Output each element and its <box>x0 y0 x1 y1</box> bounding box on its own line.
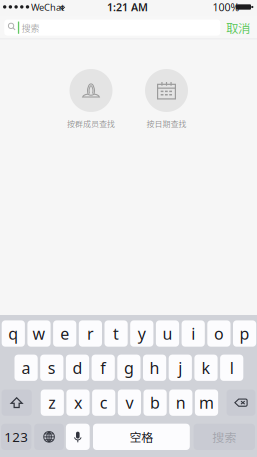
staticText: c <box>100 392 108 413</box>
staticText: l <box>230 357 234 378</box>
staticText: WeChat <box>31 1 64 13</box>
staticText: p <box>240 323 250 344</box>
button[interactable]: l <box>220 355 243 381</box>
staticText: k <box>201 357 210 378</box>
staticText: e <box>60 323 69 344</box>
button[interactable]: v <box>118 389 141 416</box>
button[interactable]: d <box>66 355 89 381</box>
staticText: o <box>214 323 224 344</box>
button[interactable]: s <box>40 355 63 381</box>
staticText: d <box>72 357 82 378</box>
staticText: b <box>150 392 160 413</box>
button[interactable]: f <box>92 355 115 381</box>
staticText: t <box>113 323 119 344</box>
staticText: v <box>125 392 133 413</box>
staticText: a <box>22 357 31 378</box>
staticText: m <box>199 392 214 413</box>
staticText: 取消 <box>226 19 250 37</box>
staticText: r <box>87 323 94 344</box>
button[interactable]: h <box>143 355 166 381</box>
button[interactable]: b <box>143 389 167 416</box>
button[interactable]: u <box>156 320 179 347</box>
button[interactable]: x <box>66 389 90 416</box>
staticText: 搜索 <box>22 21 40 34</box>
button[interactable]: Next keyboard <box>34 424 64 450</box>
button[interactable]: 按日期查找 <box>145 69 188 131</box>
staticText: f <box>100 357 106 378</box>
button[interactable]: t <box>104 320 128 347</box>
button[interactable]: 空格 <box>93 424 190 450</box>
button[interactable]: r <box>79 320 102 347</box>
button[interactable]: j <box>169 355 192 381</box>
button[interactable]: 搜索 <box>194 424 255 450</box>
button[interactable]: 取消 <box>225 20 251 36</box>
button[interactable]: n <box>169 389 192 416</box>
staticText: 100% <box>212 0 239 14</box>
button[interactable]: Shift <box>1 389 32 416</box>
staticText: i <box>191 323 195 344</box>
button[interactable]: Dictation <box>66 424 90 450</box>
button[interactable]: 123 <box>1 424 31 450</box>
button[interactable]: y <box>130 320 153 347</box>
button[interactable]: m <box>195 389 218 416</box>
staticText: 搜索 <box>212 428 236 446</box>
button[interactable]: Delete <box>226 389 255 416</box>
staticText: g <box>124 357 134 378</box>
staticText: 123 <box>4 428 28 446</box>
staticText: s <box>48 357 56 378</box>
staticText: z <box>48 392 56 413</box>
staticText: 1:21 AM <box>107 0 148 14</box>
button[interactable]: k <box>194 355 218 381</box>
staticText: 按群成员查找 <box>67 118 115 129</box>
button[interactable]: o <box>207 320 230 347</box>
staticText: y <box>138 323 146 344</box>
button[interactable]: e <box>53 320 76 347</box>
button[interactable]: z <box>41 389 64 416</box>
button[interactable]: p <box>233 320 256 347</box>
staticText: h <box>150 357 160 378</box>
button[interactable]: 按群成员查找 <box>69 69 112 131</box>
button[interactable]: i <box>182 320 205 347</box>
button[interactable]: g <box>117 355 140 381</box>
staticText: w <box>32 323 45 344</box>
button[interactable]: w <box>27 320 51 347</box>
staticText: q <box>8 323 18 344</box>
staticText: x <box>74 392 82 413</box>
button[interactable]: q <box>2 320 25 347</box>
staticText: n <box>176 392 186 413</box>
staticText: u <box>162 323 172 344</box>
staticText: 按日期查找 <box>146 118 186 129</box>
staticText: 空格 <box>129 428 153 446</box>
staticText: j <box>178 357 182 378</box>
button[interactable]: a <box>14 355 38 381</box>
button[interactable]: c <box>92 389 115 416</box>
